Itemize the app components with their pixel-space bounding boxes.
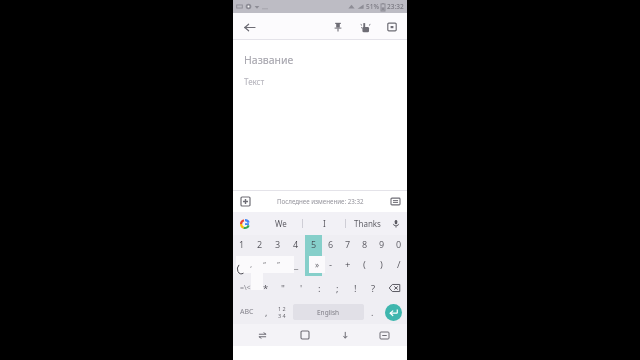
staticText: 7 — [345, 238, 351, 250]
button[interactable]: , — [260, 300, 273, 324]
button[interactable]: 6 — [322, 235, 339, 252]
button[interactable]: / — [390, 252, 407, 276]
button[interactable]: ( — [356, 252, 373, 276]
staticText: “ — [263, 260, 266, 270]
button[interactable]: # — [251, 252, 269, 276]
staticText: ” — [277, 260, 280, 270]
staticText: - — [329, 258, 333, 271]
button[interactable]: 0 — [390, 235, 407, 252]
button[interactable]: ) — [373, 252, 390, 276]
staticText: , — [265, 306, 268, 318]
button[interactable]: ' — [292, 276, 310, 300]
staticText: / — [397, 258, 401, 271]
staticText: ₽ — [275, 258, 281, 271]
button[interactable]: Switch keyboard — [241, 324, 283, 346]
button[interactable]: 2 — [251, 235, 269, 252]
staticText: Последнее изменение: 23:32 — [277, 197, 364, 205]
staticText: 2 — [257, 238, 263, 250]
button[interactable]: I — [303, 212, 345, 235]
staticText: « — [311, 258, 316, 271]
button[interactable]: Back — [240, 18, 258, 36]
button[interactable]: Название — [233, 40, 407, 190]
button[interactable]: Google — [237, 216, 253, 232]
staticText: 9 — [379, 238, 385, 250]
staticText: * — [263, 282, 269, 295]
staticText: English — [317, 308, 340, 317]
staticText: I — [323, 218, 326, 229]
staticText: Текст — [244, 76, 265, 87]
button[interactable]: Voice input — [388, 216, 403, 231]
staticText: # — [257, 258, 264, 271]
button[interactable]: Reminder — [355, 17, 375, 37]
staticText: + — [345, 258, 351, 271]
staticText: 3 4 — [278, 312, 286, 319]
staticText: 8 — [362, 238, 368, 250]
staticText: Название — [244, 53, 294, 67]
button[interactable]: Backspace — [382, 276, 407, 300]
button[interactable]: 9 — [373, 235, 390, 252]
button[interactable]: _ — [287, 252, 305, 276]
staticText: ABC — [240, 307, 254, 317]
button[interactable]: 5 — [305, 235, 322, 252]
staticText: 0 — [396, 238, 402, 250]
staticText: ‚ — [250, 260, 252, 270]
staticText: ? — [371, 282, 376, 295]
staticText: ! — [354, 282, 357, 295]
button[interactable]: ? — [364, 276, 382, 300]
button[interactable]: * — [257, 276, 274, 300]
button[interactable]: ! — [346, 276, 364, 300]
button[interactable]: + — [339, 252, 356, 276]
staticText: 51% — [366, 2, 379, 11]
staticText: ( — [363, 258, 366, 271]
button[interactable]: 8 — [356, 235, 373, 252]
staticText: @ — [238, 258, 247, 271]
staticText: 23:32 — [387, 2, 404, 11]
staticText: » — [315, 259, 320, 270]
button[interactable]: =\< — [233, 276, 257, 300]
button[interactable]: Recents — [369, 324, 399, 346]
staticText: 3 — [275, 238, 281, 250]
button[interactable]: Pin — [328, 17, 348, 37]
staticText: . — [371, 306, 374, 318]
button[interactable]: 3 — [269, 235, 287, 252]
button[interactable]: . — [366, 300, 379, 324]
button[interactable]: More options — [387, 193, 403, 209]
button[interactable]: ABC — [233, 300, 260, 324]
button[interactable]: Hide keyboard — [326, 324, 369, 346]
staticText: : — [318, 282, 321, 295]
staticText: 1 2 — [278, 305, 286, 312]
button[interactable]: Archive — [382, 17, 402, 37]
staticText: ) — [380, 258, 383, 271]
button[interactable]: 7 — [339, 235, 356, 252]
button[interactable]: ; — [328, 276, 346, 300]
button[interactable]: We — [259, 212, 302, 235]
button[interactable]: Thanks — [346, 212, 388, 235]
staticText: 4 — [293, 238, 299, 250]
button[interactable]: English — [293, 304, 364, 320]
button[interactable]: Add — [237, 193, 253, 209]
staticText: We — [275, 218, 287, 229]
staticText: =\< — [240, 283, 251, 293]
button[interactable]: 4 — [287, 235, 305, 252]
staticText: ' — [300, 282, 303, 295]
staticText: 1 — [239, 238, 245, 250]
staticText: " — [281, 282, 285, 295]
button[interactable]: @ — [233, 252, 251, 276]
button[interactable]: : — [310, 276, 328, 300]
button[interactable]: Enter — [385, 304, 402, 321]
button[interactable]: 1 — [233, 235, 251, 252]
staticText: Thanks — [354, 218, 381, 229]
staticText: ; — [336, 282, 339, 295]
button[interactable]: Numbers — [273, 300, 291, 324]
button[interactable]: " — [274, 276, 292, 300]
button[interactable]: Home — [283, 324, 326, 346]
button[interactable]: « — [305, 252, 322, 276]
staticText: 5 — [311, 238, 317, 250]
button[interactable]: - — [322, 252, 339, 276]
staticText: _ — [294, 258, 299, 271]
button[interactable]: ₽ — [269, 252, 287, 276]
staticText: 6 — [328, 238, 334, 250]
